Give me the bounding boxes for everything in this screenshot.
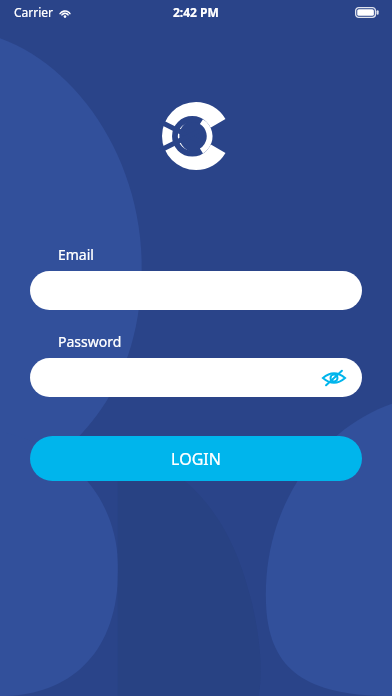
button[interactable]: Show password — [30, 358, 362, 397]
button[interactable]: Show password — [320, 364, 348, 392]
staticText: 2:42 PM — [173, 4, 219, 20]
staticText: LOGIN — [171, 448, 221, 470]
button[interactable] — [30, 271, 362, 310]
staticText: Carrier — [14, 4, 54, 20]
staticText: Password — [58, 332, 122, 351]
staticText: Email — [58, 245, 94, 264]
button[interactable]: LOGIN — [30, 436, 362, 481]
